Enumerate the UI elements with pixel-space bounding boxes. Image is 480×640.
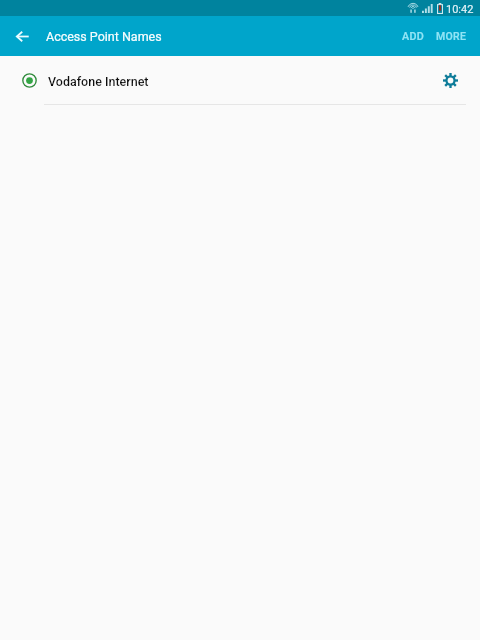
button[interactable]: MORE [430,18,480,54]
staticText: ADD [402,30,425,43]
button[interactable]: ADD [384,18,430,55]
staticText: MORE [436,30,467,42]
staticText: 10:42 [446,3,474,16]
button[interactable]: APN settings [428,58,472,102]
button[interactable]: Navigate up [0,16,40,56]
button[interactable]: Vodafone Internet [0,56,480,104]
staticText: Access Point Names [46,29,162,44]
staticText: Vodafone Internet [48,74,149,89]
